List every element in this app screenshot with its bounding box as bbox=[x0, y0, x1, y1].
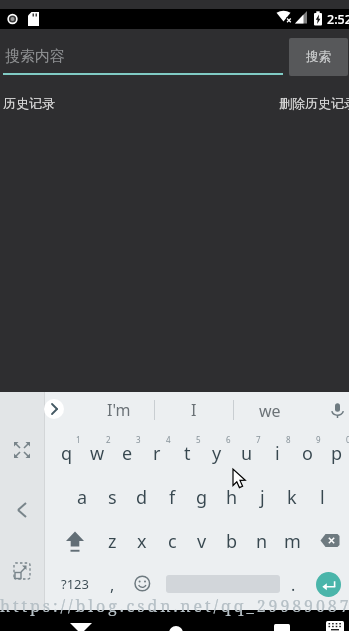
staticText: j bbox=[260, 485, 265, 510]
button[interactable]: x bbox=[127, 519, 157, 563]
button[interactable]: h bbox=[217, 475, 247, 519]
button[interactable]: k bbox=[277, 475, 307, 519]
staticText: 历史记录 bbox=[3, 95, 55, 111]
button[interactable]: y bbox=[202, 431, 232, 475]
staticText: w bbox=[90, 441, 105, 466]
staticText: b bbox=[226, 529, 238, 554]
button[interactable]: f bbox=[157, 475, 187, 519]
staticText: 6 bbox=[226, 434, 231, 445]
button[interactable] bbox=[316, 572, 341, 597]
staticText: 8 bbox=[286, 434, 291, 445]
button[interactable]: i bbox=[262, 431, 292, 475]
staticText: 7 bbox=[256, 434, 261, 445]
staticText: r bbox=[153, 441, 161, 466]
staticText: e bbox=[122, 441, 133, 466]
staticText: a bbox=[77, 485, 88, 510]
button[interactable] bbox=[6, 434, 38, 466]
button[interactable]: b bbox=[217, 519, 247, 563]
staticText: z bbox=[108, 529, 117, 554]
button[interactable]: g bbox=[187, 475, 217, 519]
staticText: i bbox=[275, 441, 280, 466]
button[interactable]: we bbox=[235, 396, 305, 426]
staticText: https://blog.csdn.net/qq_29989087 bbox=[0, 595, 349, 617]
button[interactable]: . bbox=[280, 565, 306, 605]
button[interactable]: t bbox=[172, 431, 202, 475]
button[interactable] bbox=[313, 519, 349, 563]
staticText: l bbox=[320, 485, 325, 510]
staticText: I bbox=[191, 399, 197, 421]
button[interactable]: n bbox=[247, 519, 277, 563]
staticText: 1 bbox=[76, 434, 81, 445]
button[interactable]: u bbox=[232, 431, 262, 475]
staticText: 2:52 bbox=[327, 11, 349, 28]
button[interactable]: c bbox=[157, 519, 187, 563]
staticText: g bbox=[196, 485, 208, 510]
staticText: q bbox=[61, 441, 73, 466]
button[interactable]: 搜索内容 bbox=[5, 47, 205, 69]
staticText: y bbox=[212, 441, 222, 466]
button[interactable] bbox=[245, 610, 303, 631]
staticText: we bbox=[259, 400, 281, 422]
staticText: c bbox=[168, 529, 177, 554]
button[interactable] bbox=[320, 610, 349, 631]
button[interactable] bbox=[6, 554, 38, 586]
button[interactable]: e bbox=[112, 431, 142, 475]
button[interactable]: o bbox=[292, 431, 322, 475]
button[interactable]: q bbox=[52, 431, 82, 475]
button[interactable] bbox=[149, 610, 207, 631]
button[interactable] bbox=[128, 564, 157, 604]
button[interactable] bbox=[44, 399, 64, 419]
staticText: k bbox=[287, 485, 297, 510]
button[interactable]: , bbox=[99, 565, 125, 605]
button[interactable]: ?123 bbox=[52, 564, 98, 604]
button[interactable]: m bbox=[277, 519, 307, 563]
staticText: v bbox=[197, 529, 207, 554]
button[interactable] bbox=[58, 519, 92, 563]
button[interactable] bbox=[52, 610, 110, 631]
staticText: , bbox=[110, 574, 115, 596]
staticText: 搜索 bbox=[306, 49, 331, 65]
button[interactable]: a bbox=[67, 475, 97, 519]
staticText: h bbox=[226, 485, 238, 510]
button[interactable] bbox=[6, 494, 38, 526]
staticText: x bbox=[137, 529, 147, 554]
staticText: 0 bbox=[346, 434, 349, 445]
staticText: . bbox=[291, 574, 296, 596]
staticText: I'm bbox=[107, 399, 131, 421]
staticText: f bbox=[169, 485, 176, 510]
button[interactable]: I bbox=[159, 395, 229, 425]
button[interactable]: 删除历史记录 bbox=[279, 95, 349, 111]
staticText: 4 bbox=[166, 434, 171, 445]
staticText: 5 bbox=[196, 434, 201, 445]
button[interactable]: w bbox=[82, 431, 112, 475]
staticText: n bbox=[256, 529, 268, 554]
staticText: o bbox=[302, 441, 313, 466]
staticText: 2 bbox=[106, 434, 111, 445]
staticText: t bbox=[184, 441, 191, 466]
staticText: ?123 bbox=[61, 575, 89, 593]
staticText: d bbox=[136, 485, 148, 510]
staticText: u bbox=[241, 441, 253, 466]
staticText: s bbox=[108, 485, 117, 510]
button[interactable] bbox=[322, 394, 349, 424]
button[interactable]: I'm bbox=[84, 395, 154, 425]
staticText: p bbox=[331, 441, 343, 466]
button[interactable]: d bbox=[127, 475, 157, 519]
staticText: 9 bbox=[316, 434, 321, 445]
button[interactable]: r bbox=[142, 431, 172, 475]
button[interactable]: j bbox=[247, 475, 277, 519]
button[interactable]: v bbox=[187, 519, 217, 563]
staticText: 3 bbox=[136, 434, 141, 445]
staticText: m bbox=[284, 529, 301, 554]
button[interactable]: z bbox=[97, 519, 127, 563]
button[interactable]: p bbox=[322, 431, 349, 475]
button[interactable]: s bbox=[97, 475, 127, 519]
button[interactable]: l bbox=[307, 475, 337, 519]
button[interactable]: 搜索 bbox=[289, 38, 348, 76]
